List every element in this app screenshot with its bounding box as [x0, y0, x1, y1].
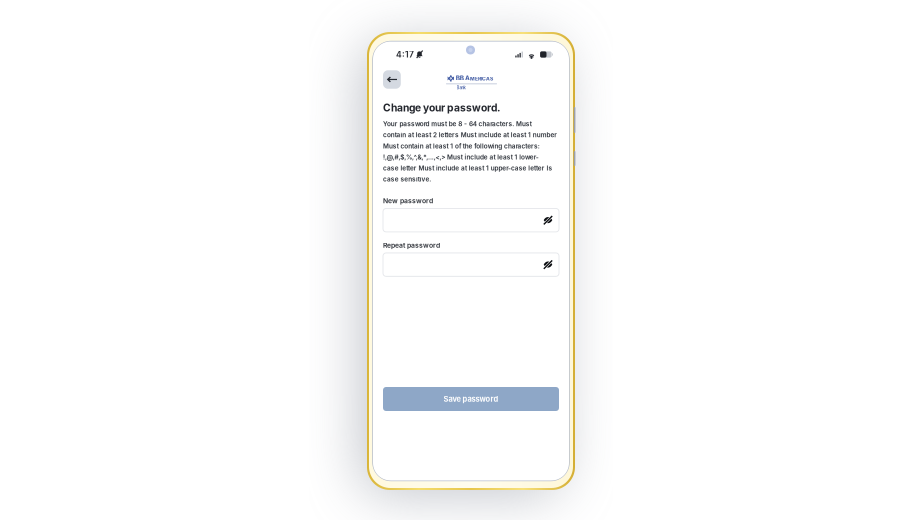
button[interactable]: Save password: [383, 387, 559, 411]
staticText: A: [465, 74, 470, 82]
button[interactable]: Back: [383, 70, 401, 89]
staticText: MERICAS: [470, 76, 493, 82]
staticText: Your password must be 8 - 64 characters.…: [383, 120, 557, 183]
staticText: Change your password.: [383, 101, 500, 114]
button[interactable]: Show password: [543, 216, 559, 225]
staticText: New password: [383, 197, 433, 205]
staticText: BB: [456, 74, 464, 82]
button[interactable]: Show password: [543, 260, 559, 269]
staticText: Repeat password: [383, 241, 440, 249]
staticText: 4:17: [396, 49, 414, 60]
staticText: Bank: [456, 85, 465, 90]
staticText: Save password: [443, 394, 498, 403]
